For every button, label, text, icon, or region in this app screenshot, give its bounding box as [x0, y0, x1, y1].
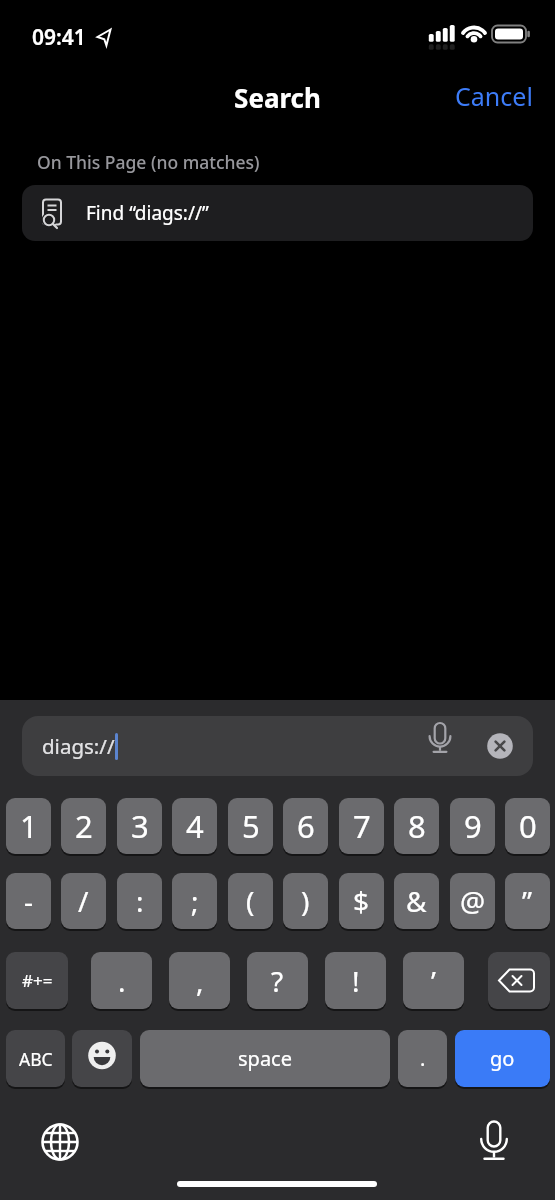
staticText: - [24, 882, 34, 920]
button[interactable]: - [6, 873, 51, 929]
staticText: ’ [431, 962, 436, 1000]
button[interactable]: ABC [6, 1030, 65, 1087]
button[interactable]: space [140, 1030, 390, 1087]
staticText: Cancel [455, 79, 533, 113]
staticText: 0 [519, 805, 537, 847]
button[interactable]: / [61, 873, 106, 929]
button[interactable]: go [455, 1030, 550, 1087]
staticText: space [238, 1045, 292, 1072]
staticText: ? [271, 962, 284, 1000]
button[interactable]: 9 [450, 798, 495, 854]
staticText: $ [353, 882, 370, 920]
button[interactable]: #+= [6, 952, 68, 1009]
staticText: ” [522, 882, 533, 920]
button[interactable]: ! [325, 952, 386, 1009]
staticText: 09:41 [32, 23, 86, 52]
staticText: & [406, 882, 427, 920]
button[interactable]: Cancel [445, 76, 545, 116]
button[interactable]: 2 [61, 798, 106, 854]
staticText: go [490, 1045, 515, 1072]
button[interactable]: : [117, 873, 162, 929]
staticText: Find “diags://” [86, 200, 209, 226]
button[interactable]: ( [228, 873, 273, 929]
button[interactable]: 0 [505, 798, 550, 854]
staticText: . [420, 1045, 426, 1072]
button[interactable]: ) [283, 873, 328, 929]
staticText: Search [0, 80, 555, 115]
staticText: / [78, 882, 89, 920]
button[interactable]: , [169, 952, 230, 1009]
button[interactable]: Find “diags://” [22, 185, 533, 241]
staticText: @ [460, 882, 486, 920]
button[interactable]: ” [505, 873, 550, 929]
staticText: diags:// [42, 732, 115, 760]
staticText: 6 [297, 805, 315, 847]
button[interactable]: . [91, 952, 152, 1009]
staticText: ( [246, 882, 255, 920]
staticText: ) [301, 882, 310, 920]
staticText: 9 [464, 805, 482, 847]
button[interactable] [488, 952, 550, 1009]
staticText: 8 [408, 805, 426, 847]
button[interactable]: 6 [283, 798, 328, 854]
staticText: , [196, 962, 204, 1000]
button[interactable]: ’ [403, 952, 464, 1009]
staticText: 4 [186, 805, 204, 847]
staticText: ! [352, 962, 360, 1000]
button[interactable]: diags:// [22, 716, 533, 776]
staticText: 7 [353, 805, 371, 847]
staticText: 3 [131, 805, 149, 847]
button[interactable]: . [398, 1030, 447, 1087]
button[interactable] [38, 1120, 82, 1164]
staticText: #+= [22, 969, 53, 992]
button[interactable]: ? [247, 952, 308, 1009]
button[interactable]: $ [339, 873, 384, 929]
staticText: 1 [20, 805, 38, 847]
staticText: On This Page (no matches) [37, 150, 260, 174]
button[interactable] [472, 1116, 516, 1164]
staticText: : [136, 882, 144, 920]
staticText: ; [191, 882, 199, 920]
button[interactable]: 5 [228, 798, 273, 854]
staticText: ABC [19, 1047, 53, 1071]
button[interactable]: @ [450, 873, 495, 929]
button[interactable]: & [394, 873, 439, 929]
button[interactable] [72, 1030, 132, 1087]
staticText: . [118, 962, 126, 1000]
button[interactable]: 3 [117, 798, 162, 854]
button[interactable]: 7 [339, 798, 384, 854]
staticText: 5 [242, 805, 260, 847]
staticText: 2 [75, 805, 93, 847]
button[interactable]: 1 [6, 798, 51, 854]
button[interactable]: 4 [172, 798, 217, 854]
button[interactable]: ; [172, 873, 217, 929]
button[interactable]: 8 [394, 798, 439, 854]
